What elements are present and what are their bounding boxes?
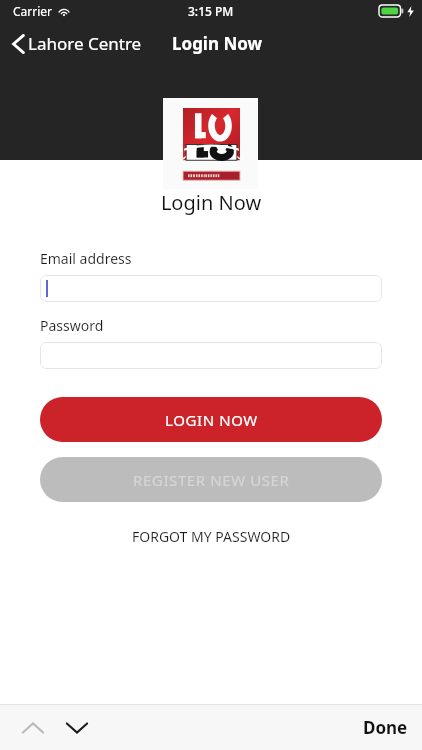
button[interactable]: FORGOT MY PASSWORD xyxy=(40,523,382,550)
button[interactable]: REGISTER NEW USER xyxy=(40,457,382,502)
button[interactable]: LOGIN NOW xyxy=(40,397,382,442)
other: Back xyxy=(12,34,25,54)
staticText: Login Now xyxy=(0,189,422,216)
staticText: Password xyxy=(40,316,104,335)
staticText: FORGOT MY PASSWORD xyxy=(132,527,291,546)
staticText: Done xyxy=(363,716,408,739)
staticText: REGISTER NEW USER xyxy=(133,470,290,490)
button[interactable] xyxy=(40,342,382,369)
staticText: Email address xyxy=(40,249,132,268)
button[interactable] xyxy=(40,275,382,302)
button[interactable]: Done xyxy=(349,708,422,747)
staticText: Lahore Centre xyxy=(28,32,142,55)
button[interactable]: Next field xyxy=(58,714,96,742)
staticText: Login Now xyxy=(172,32,263,55)
button[interactable]: Previous field xyxy=(14,714,52,742)
staticText: Carrier xyxy=(13,3,53,19)
button[interactable]: Back xyxy=(0,26,148,61)
staticText: LOGIN NOW xyxy=(165,410,258,430)
staticText: 3:15 PM xyxy=(188,3,234,19)
